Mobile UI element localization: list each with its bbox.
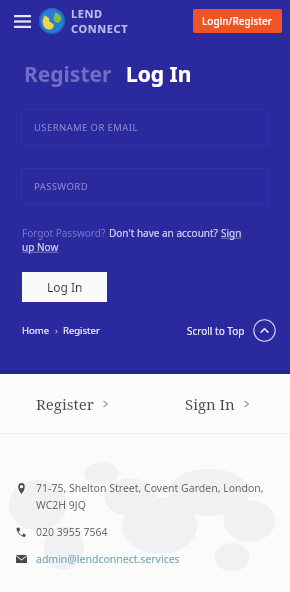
staticText: Register bbox=[24, 60, 112, 89]
staticText: Sign bbox=[221, 226, 242, 240]
button[interactable]: USERNAME OR EMAIL bbox=[21, 109, 269, 146]
button[interactable]: Home bbox=[22, 324, 50, 337]
staticText: admin@lendconnect.services bbox=[36, 552, 180, 566]
button[interactable]: Sign In bbox=[145, 374, 290, 434]
button[interactable]: Scroll to Top bbox=[187, 319, 276, 342]
button[interactable]: Register bbox=[0, 374, 145, 434]
staticText: › bbox=[50, 324, 63, 337]
staticText: USERNAME OR EMAIL bbox=[34, 121, 138, 134]
staticText: Register bbox=[36, 394, 94, 414]
staticText: LEND bbox=[71, 6, 103, 21]
button[interactable]: Log In bbox=[126, 60, 192, 89]
button[interactable]: LEND bbox=[71, 6, 129, 36]
staticText: Home bbox=[22, 324, 50, 337]
button[interactable]: up Now bbox=[22, 240, 59, 254]
button[interactable]: admin@lendconnect.services bbox=[36, 552, 180, 566]
staticText: Scroll to Top bbox=[187, 324, 245, 338]
button[interactable]: Register bbox=[24, 60, 112, 89]
button[interactable]: 020 3955 7564 bbox=[36, 525, 108, 539]
button[interactable]: Forgot Password? bbox=[22, 226, 106, 240]
button[interactable]: Register bbox=[63, 324, 100, 337]
staticText: PASSWORD bbox=[34, 180, 88, 193]
staticText: 020 3955 7564 bbox=[36, 525, 108, 539]
staticText: Log In bbox=[47, 279, 83, 295]
staticText: Forgot Password? bbox=[22, 226, 106, 240]
staticText: Sign In bbox=[185, 394, 235, 414]
staticText: Login/Register bbox=[202, 14, 273, 28]
button[interactable]: PASSWORD bbox=[21, 168, 269, 205]
staticText: Register bbox=[63, 324, 100, 337]
button[interactable]: Sign bbox=[221, 226, 242, 240]
staticText: 71-75, Shelton Street, Covent Garden, Lo… bbox=[36, 481, 276, 512]
staticText: CONNECT bbox=[71, 21, 129, 36]
staticText: Don't have an account? bbox=[109, 226, 218, 240]
button[interactable]: Login/Register bbox=[193, 9, 282, 33]
staticText: up Now bbox=[22, 240, 59, 254]
button[interactable]: Menu bbox=[9, 8, 35, 34]
button[interactable]: Log In bbox=[22, 272, 107, 302]
staticText: Log In bbox=[126, 60, 192, 89]
other: Scroll to Top bbox=[253, 319, 276, 342]
